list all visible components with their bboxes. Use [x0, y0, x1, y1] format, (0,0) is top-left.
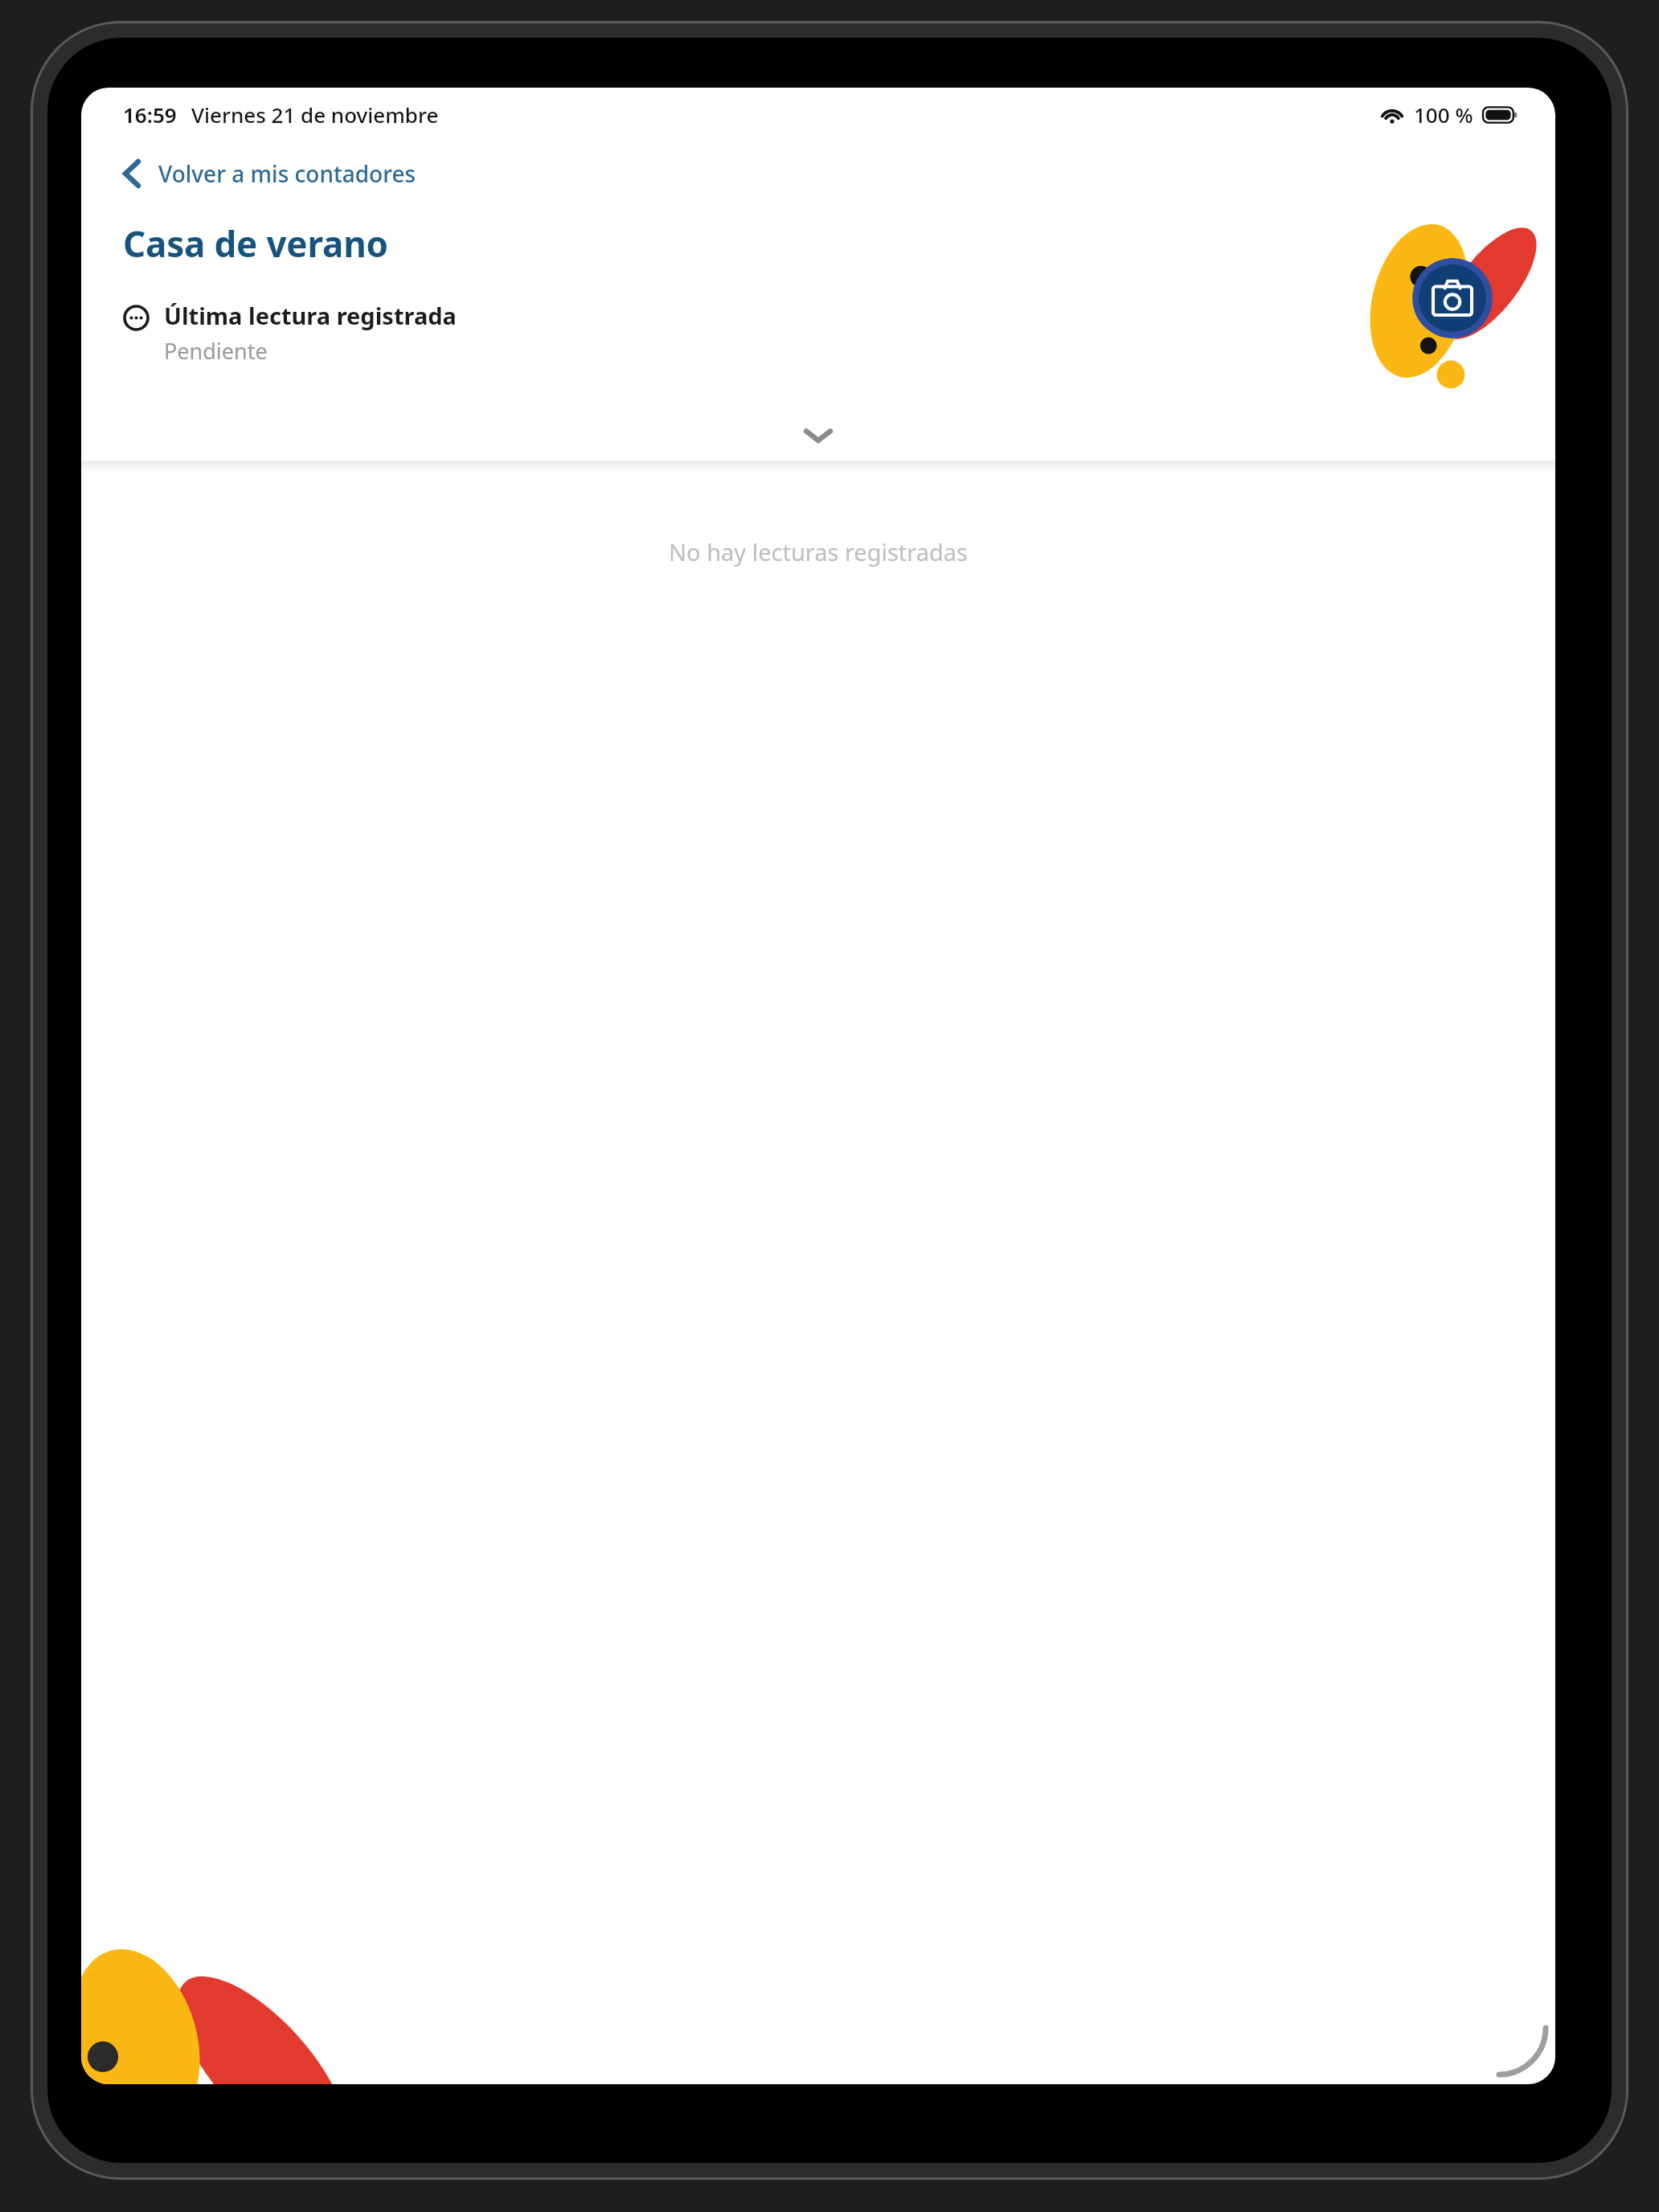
- button[interactable]: Tomar foto del contador: [1412, 258, 1493, 338]
- button[interactable]: Volver a mis contadores: [113, 152, 436, 195]
- staticText: Viernes 21 de noviembre: [191, 100, 439, 129]
- staticText: 100 %: [1414, 100, 1473, 129]
- button[interactable]: Última lectura registrada: [81, 300, 1555, 366]
- staticText: Pendiente: [164, 336, 268, 366]
- staticText: No hay lecturas registradas: [81, 536, 1555, 567]
- staticText: Última lectura registrada: [164, 300, 457, 331]
- staticText: 16:59: [123, 100, 177, 129]
- button[interactable]: Expandir: [81, 411, 1555, 461]
- staticText: Casa de verano: [123, 219, 388, 268]
- staticText: Volver a mis contadores: [158, 158, 416, 189]
